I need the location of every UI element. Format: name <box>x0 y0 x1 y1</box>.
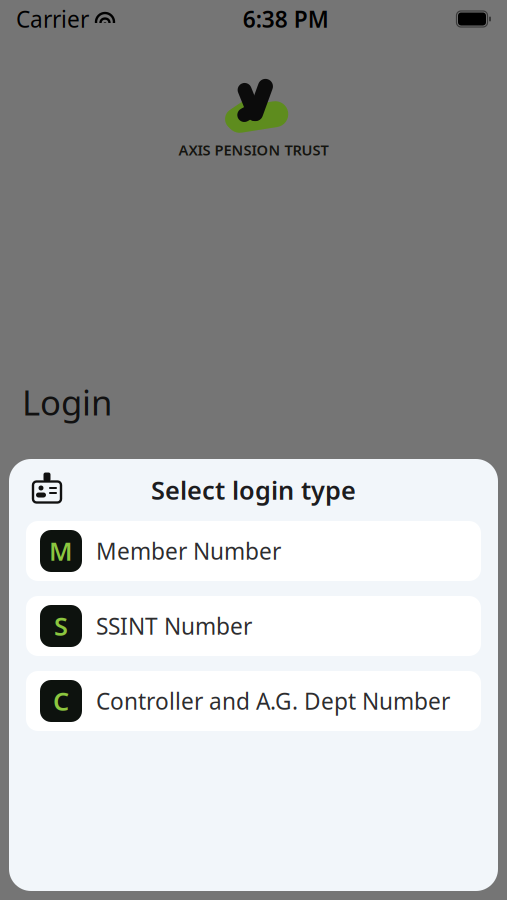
button[interactable]: S <box>26 596 481 656</box>
button[interactable]: M <box>26 521 481 581</box>
staticText: Carrier <box>16 4 89 34</box>
button[interactable]: C <box>26 671 481 731</box>
staticText: Controller and A.G. Dept Number <box>96 686 450 716</box>
staticText: Select login type <box>151 473 356 507</box>
staticText: M <box>49 534 73 568</box>
staticText: Login <box>22 379 112 425</box>
staticText: S <box>54 609 68 643</box>
staticText: Member Number <box>96 536 281 566</box>
staticText: 6:38 PM <box>243 4 329 34</box>
staticText: AXIS PENSION TRUST <box>178 140 328 159</box>
staticText: SSINT Number <box>96 611 252 641</box>
staticText: C <box>53 684 69 718</box>
